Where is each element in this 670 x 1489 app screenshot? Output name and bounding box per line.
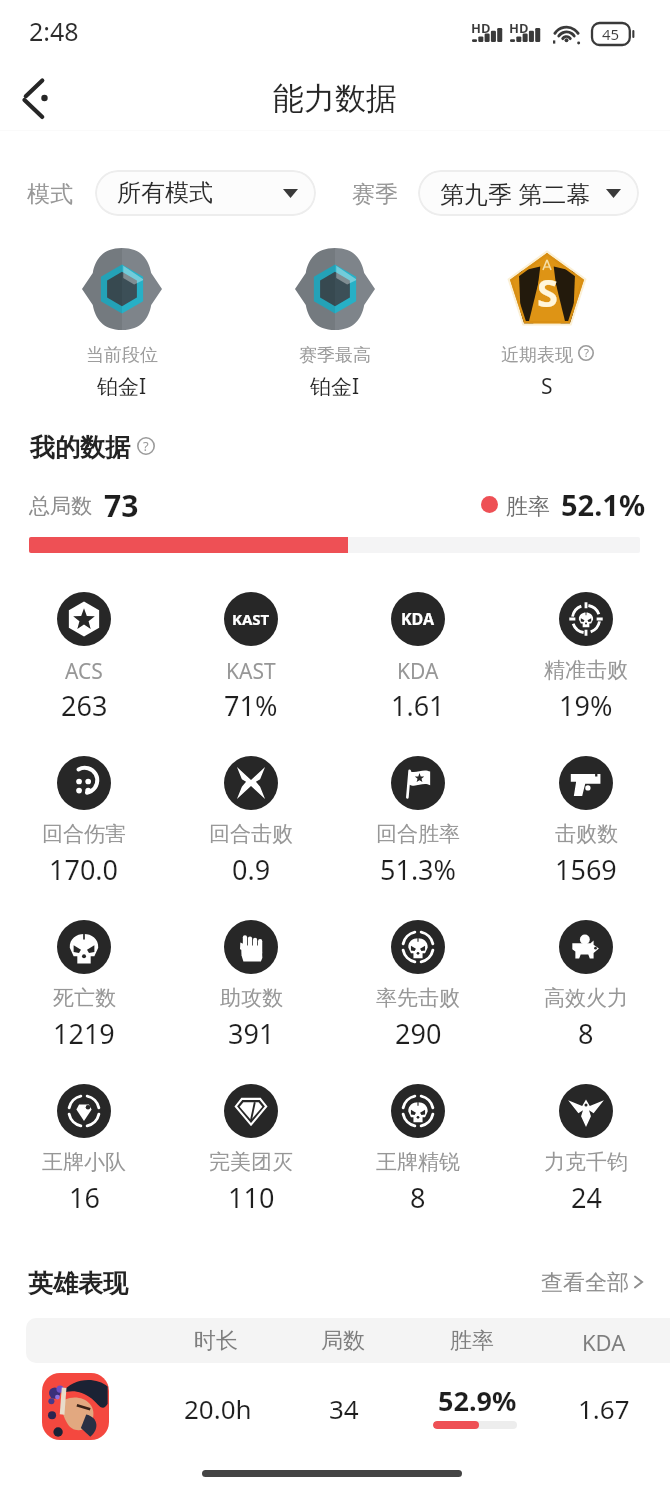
staticText: KDA [397, 657, 439, 686]
staticText: HD [509, 19, 529, 37]
staticText: ? [143, 437, 149, 455]
staticText: 20.0h [184, 1391, 252, 1426]
staticText: 8 [578, 1015, 594, 1052]
button[interactable]: 死亡数 [2, 914, 166, 1054]
staticText: 完美团灭 [209, 1149, 293, 1175]
staticText: 52.9% [438, 1382, 517, 1419]
staticText: 英雄表现 [28, 1268, 128, 1299]
staticText: S [537, 266, 558, 318]
staticText: 助攻数 [220, 985, 283, 1011]
staticText: 回合击败 [209, 821, 293, 847]
button[interactable]: 率先击败 [336, 914, 500, 1054]
staticText: 52.1% [561, 485, 646, 524]
staticText: 近期表现 [501, 344, 573, 367]
staticText: KDA [401, 608, 435, 630]
staticText: 2:48 [29, 14, 79, 48]
staticText: 当前段位 [86, 344, 158, 367]
button[interactable]: 完美团灭 [169, 1078, 333, 1218]
staticText: HD [471, 19, 491, 37]
staticText: 回合胜率 [376, 821, 460, 847]
button[interactable]: KAST [169, 586, 333, 726]
button[interactable]: 查看全部 [541, 1269, 644, 1297]
button[interactable]: ACS [2, 586, 166, 726]
staticText: 回合伤害 [42, 821, 126, 847]
button[interactable]: Agent [42, 1373, 109, 1440]
staticText: 45 [602, 24, 620, 44]
staticText: 王牌小队 [42, 1149, 126, 1175]
staticText: KAST [226, 657, 276, 686]
staticText: 胜率 [506, 493, 550, 521]
staticText: KAST [232, 609, 270, 629]
staticText: 我的数据 [30, 432, 130, 463]
button[interactable]: 回合击败 [169, 750, 333, 890]
button[interactable]: 所有模式 [95, 170, 316, 216]
button[interactable]: 精准击败 [504, 586, 668, 726]
staticText: 铂金I [310, 372, 360, 401]
staticText: 24 [571, 1179, 602, 1216]
button[interactable]: 力克千钧 [504, 1078, 668, 1218]
staticText: 19% [559, 687, 613, 724]
staticText: ? [584, 345, 589, 361]
button[interactable]: 助攻数 [169, 914, 333, 1054]
staticText: 16 [69, 1179, 100, 1216]
staticText: 胜率 [450, 1327, 494, 1355]
button[interactable]: 回合伤害 [2, 750, 166, 890]
staticText: 1569 [555, 851, 617, 888]
staticText: 所有模式 [117, 178, 213, 208]
staticText: 模式 [27, 180, 73, 209]
staticText: 8 [410, 1179, 426, 1216]
button[interactable]: 击败数 [504, 750, 668, 890]
staticText: 290 [395, 1015, 442, 1052]
staticText: 第九季 第二幕 [440, 177, 591, 210]
button[interactable]: 王牌小队 [2, 1078, 166, 1218]
staticText: 1.67 [578, 1391, 630, 1426]
staticText: 51.3% [380, 851, 457, 888]
staticText: 死亡数 [53, 985, 116, 1011]
staticText: 110 [228, 1179, 275, 1216]
staticText: 170.0 [49, 851, 119, 888]
staticText: 总局数 [29, 493, 92, 519]
staticText: 查看全部 [541, 1269, 629, 1297]
staticText: 力克千钧 [544, 1149, 628, 1175]
button[interactable]: KDA [336, 586, 500, 726]
staticText: 391 [228, 1015, 275, 1052]
staticText: 率先击败 [376, 985, 460, 1011]
staticText: 能力数据 [273, 79, 397, 118]
staticText: 73 [104, 485, 139, 526]
staticText: KDA [582, 1327, 626, 1357]
staticText: 局数 [321, 1327, 365, 1355]
staticText: 铂金I [97, 372, 147, 401]
button[interactable]: 回合胜率 [336, 750, 500, 890]
staticText: 0.9 [232, 851, 271, 888]
staticText: 精准击败 [544, 657, 628, 683]
staticText: 34 [329, 1391, 359, 1426]
staticText: ACS [65, 657, 103, 686]
staticText: 1.61 [391, 687, 445, 724]
staticText: S [541, 372, 553, 401]
staticText: 击败数 [555, 821, 618, 847]
button[interactable]: 第九季 第二幕 [418, 170, 639, 216]
staticText: 263 [61, 687, 108, 724]
staticText: 71% [224, 687, 278, 724]
button[interactable]: Back [6, 68, 68, 128]
staticText: 时长 [194, 1327, 238, 1355]
staticText: 赛季 [352, 180, 398, 209]
staticText: 高效火力 [544, 985, 628, 1011]
staticText: 1219 [53, 1015, 115, 1052]
staticText: 赛季最高 [299, 344, 371, 367]
staticText: 王牌精锐 [376, 1149, 460, 1175]
button[interactable]: 王牌精锐 [336, 1078, 500, 1218]
button[interactable]: 高效火力 [504, 914, 668, 1054]
